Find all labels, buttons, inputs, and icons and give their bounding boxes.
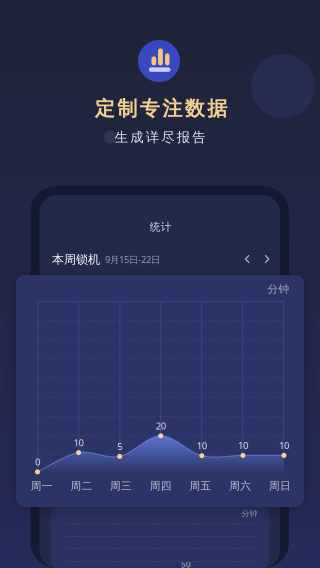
staticText: 10 bbox=[197, 439, 207, 452]
staticText: 周二 bbox=[70, 479, 92, 492]
staticText: 20 bbox=[156, 420, 166, 432]
staticText: 9月15日-22日 bbox=[105, 253, 160, 266]
staticText: 50 bbox=[181, 559, 191, 568]
staticText: 10 bbox=[238, 439, 248, 452]
staticText: 0 bbox=[35, 456, 40, 468]
staticText: 周六 bbox=[229, 479, 251, 492]
staticText: 10 bbox=[279, 439, 289, 452]
staticText: 定制专注数据 bbox=[95, 96, 227, 121]
staticText: 周三 bbox=[110, 479, 132, 492]
staticText: 统计 bbox=[150, 220, 172, 233]
staticText: 本周锁机 bbox=[52, 252, 100, 267]
staticText: 5 bbox=[117, 440, 122, 453]
staticText: 周四 bbox=[150, 479, 172, 492]
staticText: 分钟 bbox=[241, 509, 257, 518]
staticText: 周日 bbox=[269, 479, 291, 492]
staticText: 周一 bbox=[31, 479, 53, 492]
staticText: 分钟 bbox=[267, 283, 289, 296]
staticText: 生成详尽报告 bbox=[115, 129, 205, 145]
staticText: 10 bbox=[74, 436, 84, 449]
staticText: 周五 bbox=[189, 479, 211, 492]
